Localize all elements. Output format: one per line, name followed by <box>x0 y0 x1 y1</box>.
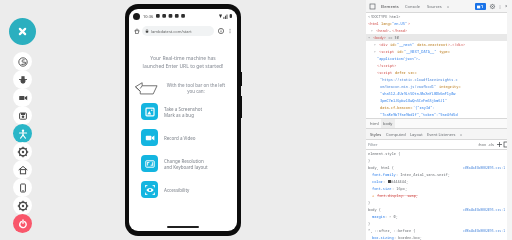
staticText: ▸ <box>371 28 376 33</box>
staticText: <html <box>368 21 381 26</box>
staticText: Record a Video <box>164 135 196 141</box>
staticText: » <box>460 132 463 137</box>
staticText: : 16px; <box>392 186 408 191</box>
button[interactable]: body <box>381 119 395 128</box>
staticText: } <box>368 158 371 163</box>
staticText: Your Real-time machine has launched Ente… <box>134 55 232 70</box>
staticText: Take a Screenshot Mark as a bug <box>164 106 203 118</box>
staticText: "application/json">… <box>377 56 421 61</box>
staticText: <!DOCTYPE html> <box>368 14 401 19</box>
button[interactable]: Device <box>13 178 32 197</box>
button[interactable]: Console <box>402 0 424 12</box>
staticText: "sha512-4Ur9Lt5OtnJ0oXmYL8Dk6mF1y0w <box>380 91 456 96</box>
button[interactable]: Close DevTools <box>503 3 510 10</box>
staticText: <head> <box>376 28 389 33</box>
staticText: > <box>408 21 411 26</box>
button[interactable]: ▾ <box>368 34 512 41</box>
staticText: id= <box>397 49 404 54</box>
staticText: <body> <box>373 35 386 40</box>
staticText: ▾ <box>368 35 373 40</box>
staticText: src= <box>408 70 417 75</box>
staticText: om/beacon.min.js/vaafbcd1" <box>380 84 439 89</box>
staticText: box-sizing <box>372 235 394 240</box>
button[interactable]: Event Listeners <box>425 129 458 139</box>
button[interactable]: Inspect element <box>368 2 376 10</box>
button[interactable]: Close <box>9 18 36 45</box>
staticText: lambdatest.com/start <box>151 29 192 34</box>
button[interactable]: Computed <box>384 129 408 139</box>
button[interactable]: New style rule <box>496 141 503 148</box>
staticText: defer <box>395 70 408 75</box>
button[interactable]: Take a Screenshot Mark as a bug <box>134 103 232 120</box>
button[interactable]: Share <box>13 52 32 71</box>
staticText: Event Listeners <box>427 132 456 137</box>
staticText: 3pmC7mlJGpbzlOwQnSCrFm6Sjkm6J1" <box>380 98 449 103</box>
staticText: type= <box>437 49 450 54</box>
button[interactable]: Settings <box>488 2 496 10</box>
staticText: Accessibility <box>164 187 190 193</box>
staticText: font-size <box>372 186 392 191</box>
button[interactable]: Stop session <box>13 214 32 233</box>
staticText: Change Resolution and Keyboard layout <box>164 158 208 170</box>
staticText: Filter <box>368 142 378 147</box>
staticText: c08a4b45b8882095.css:1 <box>463 166 506 170</box>
staticText: body { <box>368 207 381 212</box>
button[interactable]: Tools <box>13 196 32 215</box>
staticText: : border-box; <box>394 235 423 240</box>
button[interactable]: Accessibility <box>13 124 32 143</box>
staticText: </head> <box>392 28 408 33</box>
staticText: Sources <box>427 4 442 9</box>
staticText: integrity= <box>439 84 461 89</box>
button[interactable]: lambdatest.com/start <box>145 26 211 36</box>
staticText: … <box>389 28 392 33</box>
button[interactable]: Home <box>13 160 32 179</box>
button[interactable]: Bug <box>13 70 32 89</box>
staticText: c08a4b45b8882095.css:1 <box>463 229 506 233</box>
staticText: *, ::after, ::before { <box>368 228 416 233</box>
button[interactable]: More panes <box>458 131 464 137</box>
button[interactable]: Layout <box>408 129 425 139</box>
staticText: :hov <box>478 142 486 147</box>
button[interactable]: More tabs <box>445 3 452 10</box>
staticText: : <box>383 179 388 184</box>
staticText: Elements <box>381 4 399 9</box>
staticText: body, html { <box>368 165 394 170</box>
staticText: Console <box>405 4 421 9</box>
button[interactable]: Change Resolution and Keyboard layout <box>134 155 232 172</box>
staticText: : ▸ 0; <box>385 214 398 219</box>
staticText: </script> <box>377 63 397 68</box>
staticText: <script <box>379 49 397 54</box>
staticText: margin <box>372 214 385 219</box>
button[interactable]: Home <box>132 26 141 35</box>
staticText: With the tool bar on the left you can: <box>160 82 232 95</box>
button[interactable]: Styles <box>368 129 384 139</box>
button[interactable]: Toggle rendering <box>503 141 510 148</box>
staticText: <div <box>379 42 390 47</box>
staticText: color <box>372 179 383 184</box>
button[interactable]: Record a Video <box>134 129 232 146</box>
button[interactable]: More options <box>225 26 234 35</box>
button[interactable]: Customize DevTools <box>496 3 503 10</box>
staticText: font-display: swap; <box>377 193 418 198</box>
staticText: } <box>368 221 371 226</box>
staticText: } <box>368 200 371 205</box>
staticText: × <box>505 3 508 10</box>
staticText: » <box>447 4 450 9</box>
button[interactable]: Settings <box>13 142 32 161</box>
staticText: Layout <box>410 132 423 137</box>
staticText: font-family <box>372 172 396 177</box>
staticText: #444444; <box>391 179 409 184</box>
button[interactable]: Page info <box>216 26 225 35</box>
staticText: 10:36 <box>143 14 154 19</box>
button[interactable]: 1 <box>477 3 484 10</box>
button[interactable]: Record video <box>13 88 32 107</box>
staticText: "en-US" <box>392 21 408 26</box>
button[interactable]: Elements <box>378 0 402 12</box>
staticText: data-reactroot <box>415 42 448 47</box>
button[interactable]: Accessibility <box>134 181 232 198</box>
staticText: body <box>383 121 393 126</box>
button[interactable]: html <box>368 119 381 128</box>
button[interactable]: Screenshot <box>13 106 32 125</box>
staticText: Styles <box>370 132 382 137</box>
button[interactable]: Sources <box>424 0 445 12</box>
